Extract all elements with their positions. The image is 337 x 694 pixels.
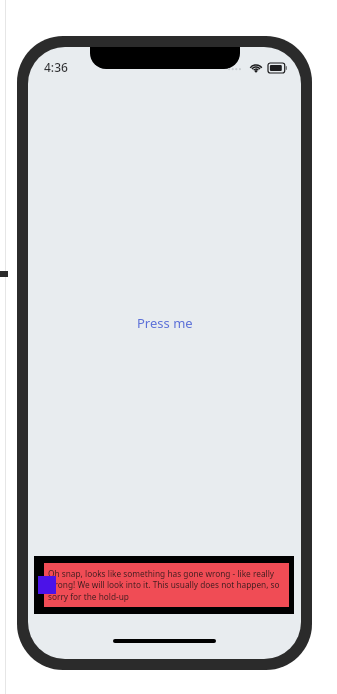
staticText: 4:36 bbox=[44, 59, 68, 75]
staticText: Oh snap, looks like something has gone w… bbox=[48, 568, 287, 602]
staticText: Press me bbox=[137, 314, 193, 332]
button[interactable]: Oh snap, looks like something has gone w… bbox=[34, 556, 294, 614]
button[interactable]: Press me bbox=[127, 308, 203, 338]
